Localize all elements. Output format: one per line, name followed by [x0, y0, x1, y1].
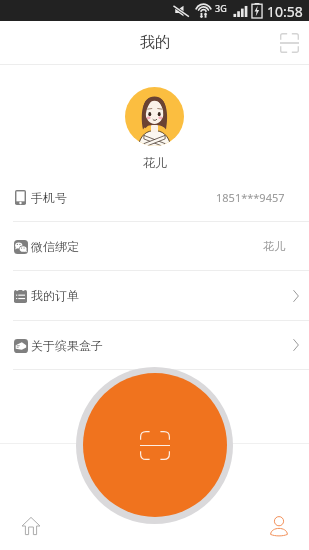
button[interactable]: 关于缤果盒子: [0, 321, 309, 369]
staticText: 我的订单: [31, 288, 79, 303]
button[interactable]: Scan: [271, 25, 307, 61]
staticText: 10:58: [267, 2, 303, 21]
staticText: 我的: [140, 33, 170, 52]
button[interactable]: 我的订单: [0, 271, 309, 320]
staticText: 微信绑定: [31, 239, 79, 254]
staticText: 关于缤果盒子: [31, 338, 103, 353]
staticText: 3G: [215, 2, 227, 14]
button[interactable]: 手机号: [0, 173, 309, 221]
button[interactable]: Profile: [258, 505, 299, 546]
staticText: 花儿: [263, 239, 285, 253]
staticText: 手机号: [31, 190, 67, 205]
button[interactable]: Scan to open: [76, 367, 233, 524]
staticText: 1851***9457: [216, 190, 285, 205]
staticText: 花儿: [143, 155, 167, 170]
button[interactable]: 微信绑定: [0, 222, 309, 270]
button[interactable]: Home: [10, 505, 51, 546]
